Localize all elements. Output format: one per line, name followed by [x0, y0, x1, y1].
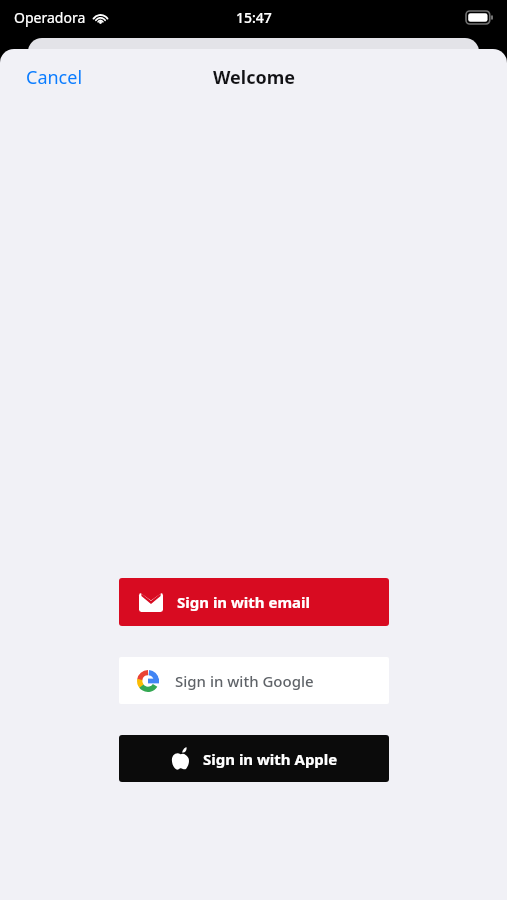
- staticText: 15:47: [236, 8, 272, 27]
- other: Apple: [171, 747, 190, 770]
- staticText: Sign in with Google: [175, 671, 314, 691]
- other: Wi-Fi: [92, 11, 109, 24]
- other: Email: [139, 593, 163, 612]
- staticText: Sign in with Apple: [203, 749, 338, 769]
- button[interactable]: Cancel: [0, 57, 109, 98]
- button[interactable]: Apple: [119, 735, 389, 782]
- other: Battery: [466, 11, 493, 24]
- button[interactable]: Email: [119, 578, 389, 626]
- staticText: Cancel: [26, 65, 83, 90]
- staticText: Welcome: [213, 65, 295, 90]
- button[interactable]: Google: [119, 657, 389, 704]
- staticText: Sign in with email: [177, 592, 311, 612]
- staticText: Operadora: [14, 8, 86, 27]
- other: Google: [137, 670, 159, 692]
